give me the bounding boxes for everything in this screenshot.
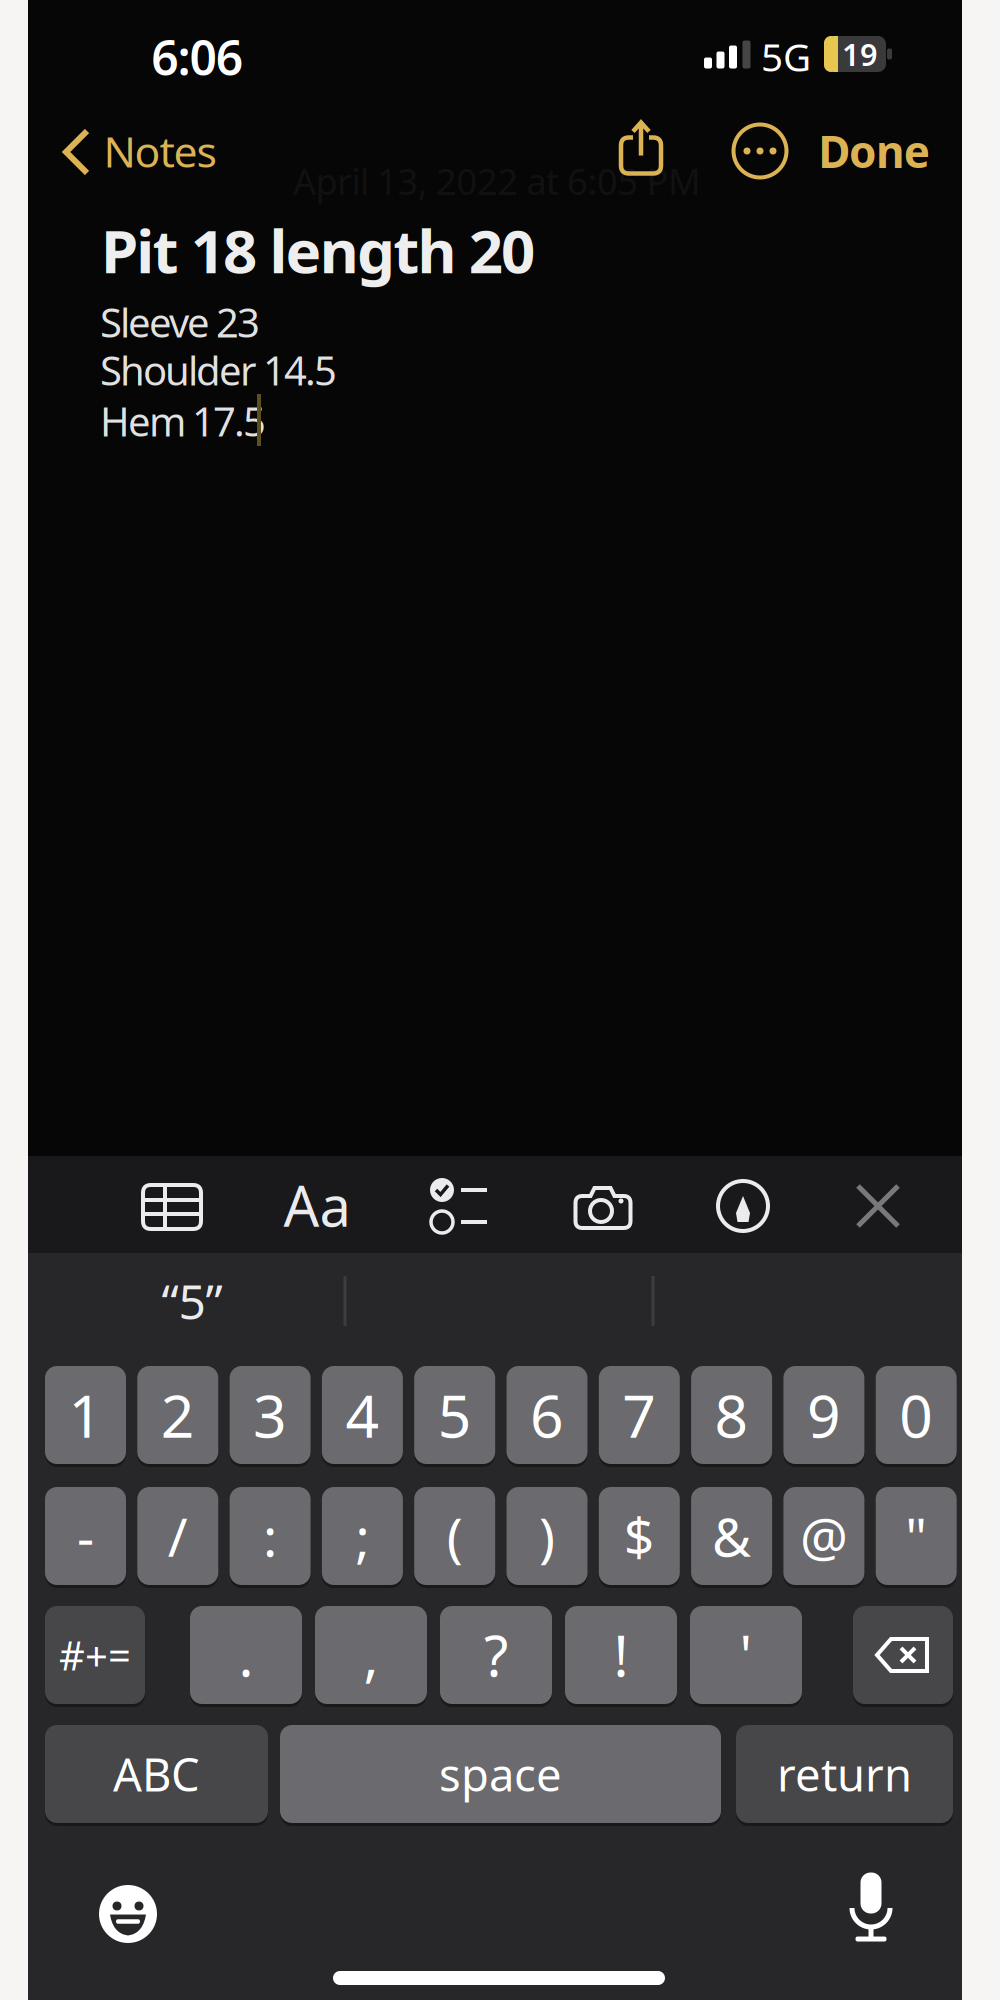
staticText: 7 <box>622 1376 656 1454</box>
button[interactable]: Dismiss keyboard <box>858 1186 898 1226</box>
staticText: - <box>77 1501 94 1571</box>
staticText: 0 <box>899 1376 933 1454</box>
button[interactable]: 2 <box>137 1366 218 1464</box>
staticText: . <box>238 1618 253 1692</box>
staticText: 19 <box>842 34 878 74</box>
staticText: Done <box>818 122 930 180</box>
staticText: Sleeve 23 <box>100 295 260 348</box>
button[interactable]: ) <box>506 1487 587 1585</box>
staticText: Shoulder 14.5 <box>100 343 337 396</box>
button[interactable]: ( <box>414 1487 495 1585</box>
staticText: 3 <box>253 1376 287 1454</box>
staticText: 2 <box>161 1376 195 1454</box>
staticText: Aa <box>283 1168 350 1242</box>
staticText: 9 <box>807 1376 841 1454</box>
staticText: ? <box>484 1618 508 1692</box>
button[interactable]: Emoji <box>99 1885 157 1943</box>
staticText: ) <box>539 1501 555 1571</box>
button[interactable]: ! <box>565 1606 677 1704</box>
staticText: , <box>363 1618 378 1692</box>
button[interactable]: - <box>45 1487 126 1585</box>
button[interactable]: Formatting <box>283 1168 350 1242</box>
button[interactable]: / <box>137 1487 218 1585</box>
button[interactable]: Dictation <box>849 1871 893 1941</box>
button[interactable]: Share <box>620 120 662 175</box>
staticText: 6 <box>530 1376 564 1454</box>
staticText: @ <box>800 1501 848 1571</box>
button[interactable]: @ <box>783 1487 864 1585</box>
button[interactable]: space <box>280 1725 721 1823</box>
button[interactable]: 8 <box>691 1366 772 1464</box>
button[interactable]: ABC <box>45 1725 268 1823</box>
button[interactable]: 0 <box>876 1366 957 1464</box>
button[interactable]: Insert photo <box>575 1188 630 1228</box>
button[interactable]: 6 <box>506 1366 587 1464</box>
staticText: April 13, 2022 at 6:05 PM <box>293 157 701 205</box>
button[interactable]: 5 <box>414 1366 495 1464</box>
staticText: Notes <box>103 123 216 179</box>
button[interactable]: “5” <box>52 1261 332 1341</box>
staticText: #+= <box>59 1628 131 1681</box>
button[interactable]: : <box>230 1487 311 1585</box>
button[interactable]: & <box>691 1487 772 1585</box>
button[interactable]: 4 <box>322 1366 403 1464</box>
button[interactable]: return <box>736 1725 953 1823</box>
staticText: ABC <box>113 1744 200 1804</box>
staticText: 5G <box>761 31 811 82</box>
button[interactable]: Done <box>818 122 930 180</box>
staticText: Pit 18 length 20 <box>101 210 535 290</box>
staticText: $ <box>624 1501 655 1571</box>
staticText: Hem 17.5 <box>100 394 266 447</box>
button[interactable]: More options <box>733 124 786 177</box>
button[interactable]: 1 <box>45 1366 126 1464</box>
staticText: ; <box>355 1501 369 1571</box>
staticText: " <box>905 1501 927 1571</box>
staticText: return <box>777 1744 912 1804</box>
button[interactable]: 7 <box>599 1366 680 1464</box>
staticText: 6:06 <box>151 25 243 89</box>
staticText: : <box>263 1501 277 1571</box>
staticText: 8 <box>715 1376 749 1454</box>
staticText: 4 <box>345 1376 379 1454</box>
button[interactable]: Checklist <box>429 1181 487 1231</box>
button[interactable]: #+= <box>45 1606 145 1704</box>
staticText: 5 <box>438 1376 472 1454</box>
button[interactable]: ? <box>440 1606 552 1704</box>
button[interactable]: $ <box>599 1487 680 1585</box>
button[interactable]: " <box>876 1487 957 1585</box>
button[interactable]: ' <box>690 1606 802 1704</box>
staticText: 1 <box>68 1376 102 1454</box>
button[interactable]: 9 <box>783 1366 864 1464</box>
staticText: ( <box>447 1501 463 1571</box>
button[interactable]: Markup <box>718 1181 768 1231</box>
staticText: & <box>712 1501 751 1571</box>
button[interactable]: Back to Notes <box>0 0 1000 2000</box>
button[interactable]: Insert table <box>143 1185 201 1229</box>
staticText: “5” <box>161 1269 222 1333</box>
staticText: ' <box>739 1618 752 1692</box>
button[interactable]: ; <box>322 1487 403 1585</box>
button[interactable]: . <box>190 1606 302 1704</box>
button[interactable]: , <box>315 1606 427 1704</box>
button[interactable]: 3 <box>230 1366 311 1464</box>
button[interactable]: Delete <box>853 1606 953 1704</box>
staticText: / <box>168 1501 188 1571</box>
staticText: ! <box>613 1618 628 1692</box>
staticText: space <box>439 1744 562 1804</box>
